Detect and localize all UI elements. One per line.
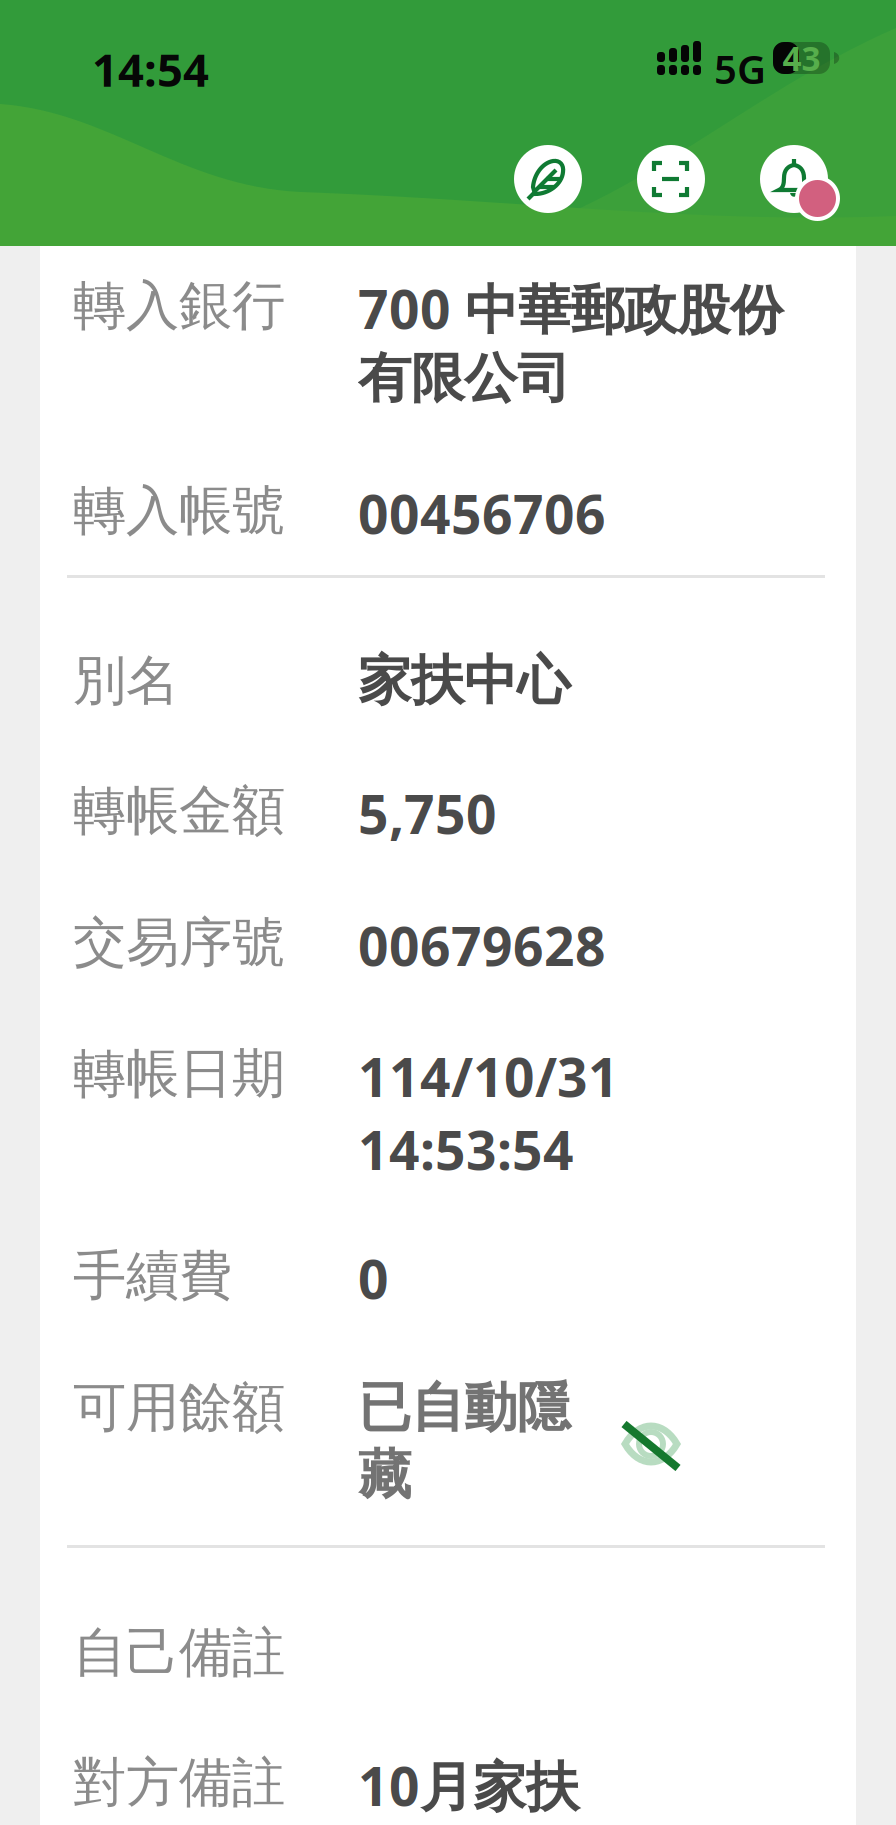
staticText: 14:54 [92,39,209,99]
button[interactable]: Compose [514,145,582,213]
staticText: 轉入銀行 [73,273,285,338]
staticText: 手續費 [73,1243,232,1308]
staticText: 10月家扶 [358,1750,579,1821]
button[interactable]: Notifications [760,145,842,223]
staticText: 0 [358,1243,389,1314]
staticText: 別名 [73,648,179,713]
staticText: 43 [782,36,820,80]
staticText: 對方備註 [73,1750,285,1815]
staticText: 700 中華郵政股份有限公司 [358,273,783,411]
staticText: 轉帳日期 [73,1041,285,1106]
staticText: 轉帳金額 [73,778,285,843]
button[interactable]: Scan QR code [637,145,705,213]
button[interactable]: Show available balance [609,1409,693,1483]
staticText: 114/10/31 14:53:54 [358,1041,619,1185]
staticText: 家扶中心 [358,648,570,713]
staticText: 00456706 [358,478,606,549]
staticText: 可用餘額 [73,1375,285,1440]
staticText: 5G [714,42,766,95]
staticText: 00679628 [358,910,606,981]
staticText: 自己備註 [73,1620,285,1685]
staticText: 交易序號 [73,910,285,975]
staticText: 轉入帳號 [73,478,285,543]
staticText: 5,750 [358,778,497,849]
staticText: 已自動隱藏 [358,1375,570,1508]
